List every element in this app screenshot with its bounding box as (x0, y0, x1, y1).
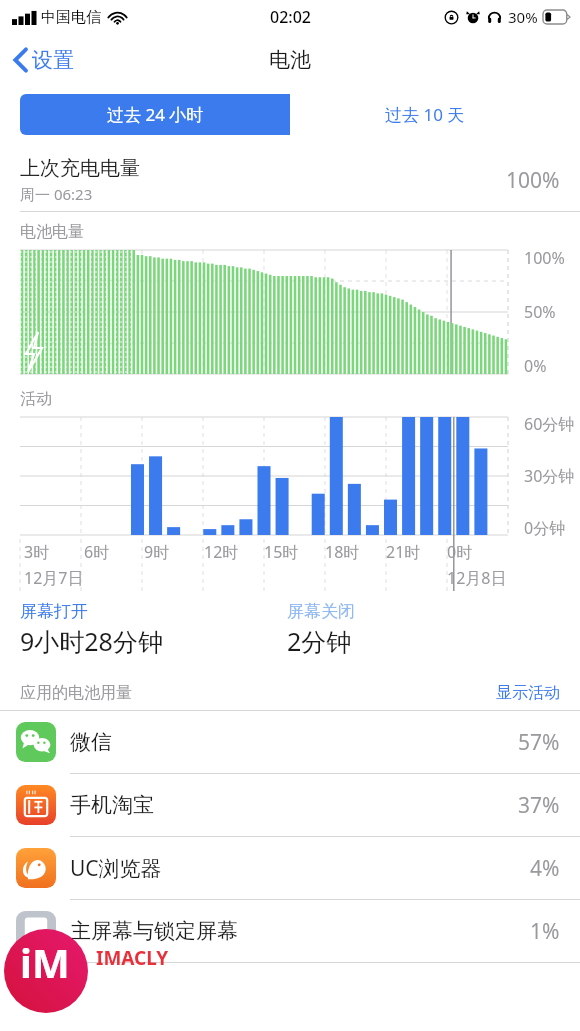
staticText: 9时 (144, 541, 170, 563)
staticText: 上次充电电量 (20, 156, 140, 181)
staticText: 微信 (70, 729, 112, 755)
button[interactable]: 手机淘宝 (0, 774, 580, 836)
staticText: 手机淘宝 (70, 792, 154, 818)
staticText: 30% (508, 7, 538, 27)
staticText: 应用的电池用量 (20, 683, 132, 703)
staticText: 60分钟 (524, 413, 575, 435)
staticText: 主屏幕与锁定屏幕 (70, 918, 238, 944)
button[interactable]: 微信 (0, 711, 580, 773)
staticText: 12月8日 (447, 567, 507, 589)
staticText: 电池电量 (20, 222, 84, 242)
staticText: UC浏览器 (70, 854, 162, 883)
staticText: 30分钟 (524, 465, 575, 487)
staticText: 电池 (269, 47, 311, 73)
staticText: 6时 (84, 541, 110, 563)
staticText: 周一 06:23 (20, 184, 93, 204)
staticText: 0% (524, 355, 547, 377)
staticText: 9小时28分钟 (20, 624, 163, 658)
staticText: 设置 (32, 47, 74, 73)
staticText: 18时 (325, 541, 360, 563)
staticText: 活动 (20, 389, 52, 409)
button[interactable]: 上次充电电量 (0, 149, 580, 211)
staticText: 50% (524, 301, 556, 323)
button[interactable]: 设置 (0, 41, 88, 79)
staticText: 02:02 (270, 6, 311, 28)
staticText: 过去 24 小时 (107, 103, 204, 126)
staticText: 屏幕打开 (20, 601, 88, 622)
staticText: 100% (506, 166, 560, 195)
staticText: 100% (524, 247, 565, 269)
staticText: 37% (518, 791, 560, 820)
staticText: 过去 10 天 (385, 103, 465, 126)
staticText: IMACLY (96, 945, 169, 971)
staticText: 2分钟 (287, 624, 352, 658)
staticText: 15时 (264, 541, 299, 563)
button[interactable]: 过去 24 小时 (20, 94, 290, 135)
staticText: 12时 (204, 541, 239, 563)
staticText: 中国电信 (41, 8, 101, 27)
button[interactable]: UC浏览器 (0, 837, 580, 899)
staticText: 0时 (447, 541, 473, 563)
button[interactable]: 显示活动 (476, 679, 580, 707)
staticText: 4% (530, 854, 560, 883)
staticText: iM (20, 935, 70, 989)
staticText: 屏幕关闭 (287, 601, 355, 622)
staticText: 12月7日 (24, 567, 84, 589)
staticText: 显示活动 (496, 683, 560, 703)
button[interactable]: 主屏幕与锁定屏幕 (0, 900, 580, 962)
staticText: 0分钟 (524, 517, 566, 539)
staticText: 3时 (24, 541, 50, 563)
button[interactable]: 过去 10 天 (290, 94, 560, 135)
staticText: 21时 (386, 541, 421, 563)
staticText: 1% (530, 917, 560, 946)
staticText: 57% (518, 728, 560, 757)
